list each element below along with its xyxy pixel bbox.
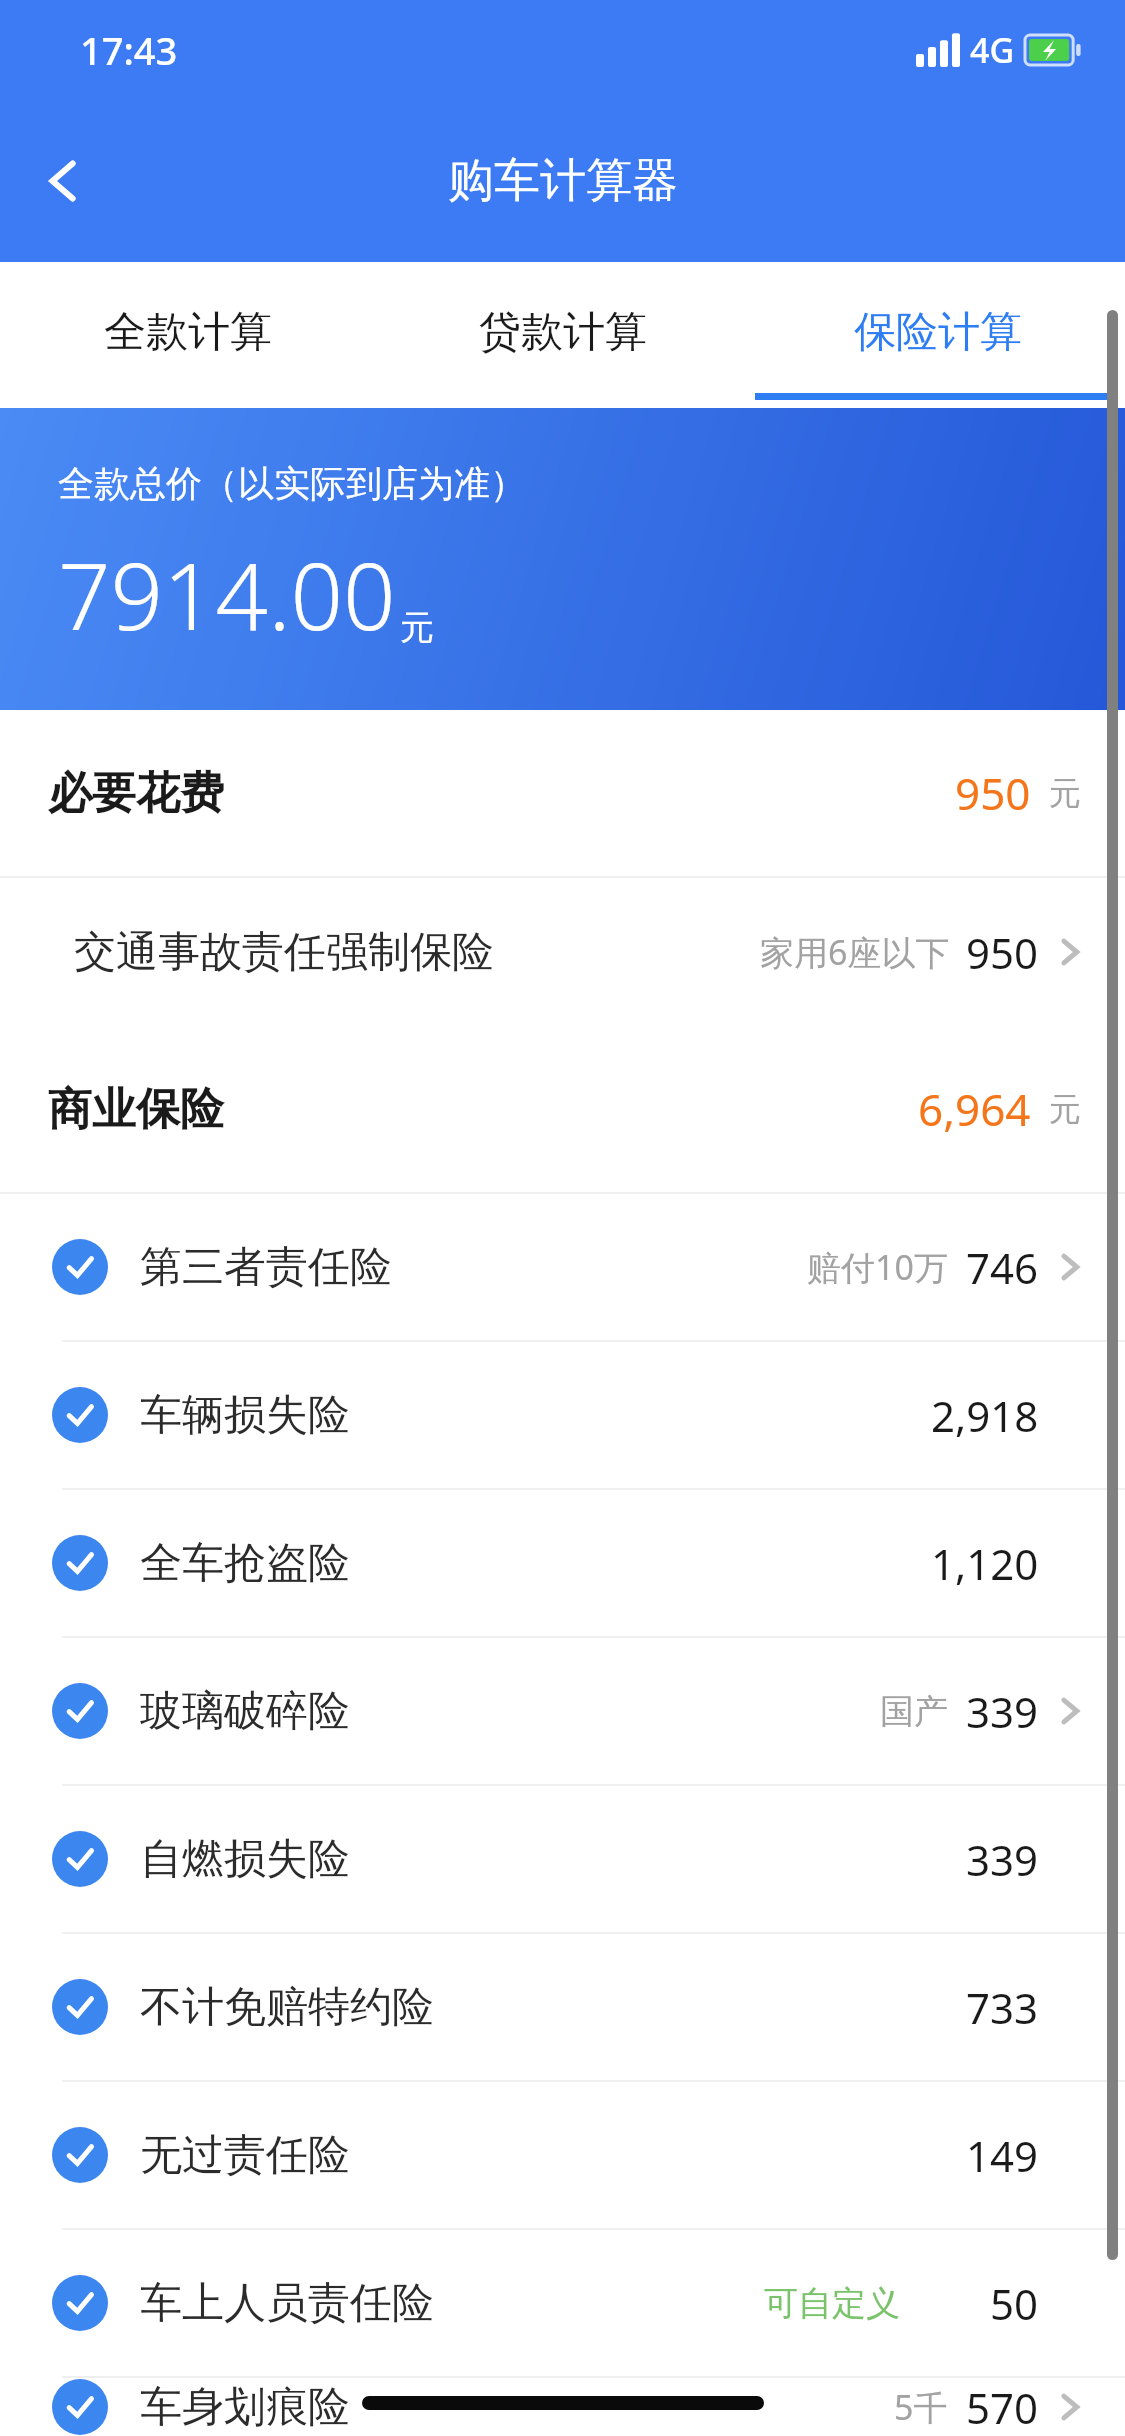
button[interactable]: 交通事故责任强制保险: [0, 878, 1125, 1026]
button[interactable]: Back: [18, 136, 108, 226]
staticText: 贷款计算: [479, 306, 647, 359]
staticText: 必要花费: [48, 766, 224, 821]
staticText: 国产: [880, 1690, 948, 1733]
staticText: 元: [400, 606, 434, 649]
button[interactable]: 保险计算: [750, 262, 1125, 403]
button[interactable]: Selected: [0, 1786, 1125, 1932]
button[interactable]: 全款计算: [0, 262, 375, 403]
staticText: 购车计算器: [448, 152, 678, 210]
button[interactable]: 贷款计算: [375, 262, 750, 403]
other: Selected: [52, 1387, 108, 1443]
staticText: 50: [990, 2275, 1039, 2332]
button[interactable]: Selected: [0, 1194, 1125, 1340]
other: Selected: [52, 2379, 108, 2435]
staticText: 可自定义: [764, 2282, 900, 2325]
other: Selected: [52, 1535, 108, 1591]
staticText: 车辆损失险: [140, 1389, 350, 1442]
button[interactable]: Selected: [0, 2230, 1125, 2376]
staticText: 7914.00: [58, 532, 396, 657]
staticText: 149: [966, 2127, 1039, 2184]
button[interactable]: Selected: [0, 2082, 1125, 2228]
button[interactable]: Selected: [0, 1638, 1125, 1784]
other: Selected: [52, 2275, 108, 2331]
staticText: 17:43: [80, 24, 178, 76]
button[interactable]: Selected: [0, 2378, 1125, 2436]
staticText: 733: [966, 1979, 1039, 2036]
staticText: 全款总价（以实际到店为准）: [58, 461, 526, 506]
staticText: 元: [1049, 1089, 1081, 1129]
staticText: 全车抢盗险: [140, 1537, 350, 1590]
staticText: 保险计算: [854, 306, 1022, 359]
staticText: 玻璃破碎险: [140, 1685, 350, 1738]
other: Selected: [52, 2127, 108, 2183]
staticText: 自燃损失险: [140, 1833, 350, 1886]
button[interactable]: Selected: [0, 1490, 1125, 1636]
staticText: 6,964: [918, 1079, 1031, 1139]
button[interactable]: 商业保险: [0, 1026, 1125, 1192]
button[interactable]: 必要花费: [0, 710, 1125, 876]
other: Selected: [52, 1979, 108, 2035]
staticText: 商业保险: [48, 1082, 224, 1137]
staticText: 车身划痕险: [140, 2381, 350, 2434]
staticText: 950: [955, 763, 1031, 823]
staticText: 不计免赔特约险: [140, 1981, 434, 2034]
other: Selected: [52, 1683, 108, 1739]
button[interactable]: Selected: [0, 1934, 1125, 2080]
staticText: 元: [1049, 773, 1081, 813]
staticText: 第三者责任险: [140, 1241, 392, 1294]
staticText: 4G: [970, 27, 1015, 73]
staticText: 赔付10万: [807, 1244, 948, 1290]
staticText: 1,120: [931, 1535, 1039, 1592]
staticText: 950: [966, 924, 1039, 981]
staticText: 车上人员责任险: [140, 2277, 434, 2330]
staticText: 746: [966, 1239, 1039, 1296]
staticText: 5千: [894, 2384, 948, 2430]
staticText: 339: [966, 1683, 1039, 1740]
staticText: 交通事故责任强制保险: [74, 926, 494, 979]
staticText: 全款计算: [104, 306, 272, 359]
staticText: 2,918: [931, 1387, 1039, 1444]
button[interactable]: Selected: [0, 1342, 1125, 1488]
staticText: 无过责任险: [140, 2129, 350, 2182]
staticText: 570: [966, 2379, 1039, 2436]
staticText: 家用6座以下: [760, 929, 950, 975]
other: Selected: [52, 1831, 108, 1887]
staticText: 339: [966, 1831, 1039, 1888]
other: Selected: [52, 1239, 108, 1295]
